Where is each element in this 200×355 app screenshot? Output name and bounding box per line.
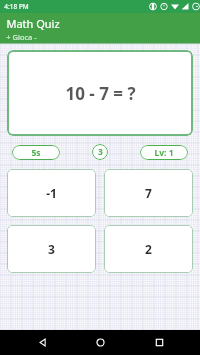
staticText: 7 <box>145 185 152 201</box>
staticText: Math Quiz <box>6 16 60 31</box>
button[interactable]: 3 <box>7 225 96 273</box>
staticText: 5s <box>31 147 41 159</box>
button[interactable]: 2 <box>104 225 193 273</box>
button[interactable]: -1 <box>7 169 96 217</box>
button[interactable]: Lv: 1 <box>140 145 188 160</box>
button[interactable]: 7 <box>104 169 193 217</box>
staticText: 10 - 7 = ? <box>65 82 136 105</box>
button[interactable]: Recent apps <box>142 330 176 355</box>
button[interactable]: 5s <box>12 145 60 160</box>
staticText: -1 <box>46 185 57 201</box>
button[interactable]: Back <box>25 330 59 355</box>
button[interactable]: 10 - 7 = ? <box>7 50 193 136</box>
staticText: 3 <box>48 241 55 257</box>
staticText: 2 <box>145 241 152 257</box>
staticText: Lv: 1 <box>154 147 174 159</box>
staticText: 4:18 PM <box>4 2 29 11</box>
staticText: + Gioca - <box>6 32 37 42</box>
staticText: 3 <box>98 146 103 158</box>
button[interactable]: Home <box>83 330 117 355</box>
button[interactable]: 3 <box>92 144 108 160</box>
